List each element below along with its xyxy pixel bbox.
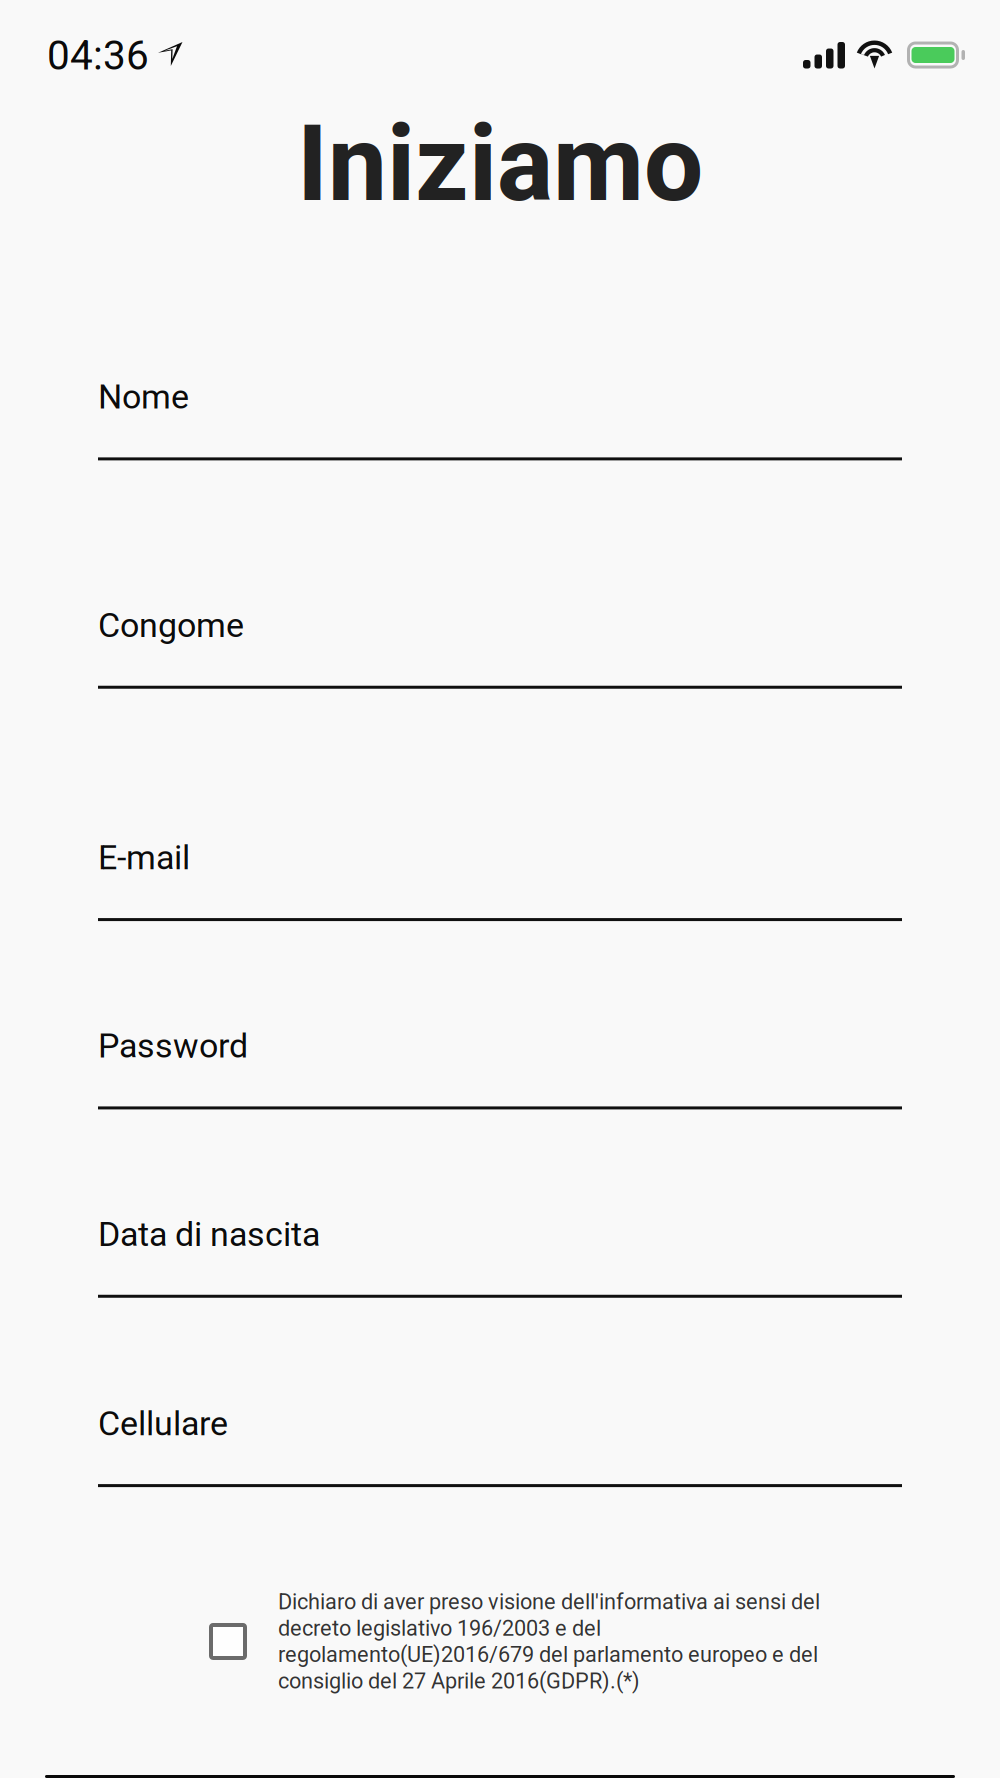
staticText: Data di nascita <box>98 1214 320 1254</box>
button[interactable]: Nome <box>98 377 902 460</box>
button[interactable]: E-mail <box>98 838 902 921</box>
button[interactable]: Dichiaro di aver preso visione dell'info… <box>0 1589 820 1694</box>
button[interactable]: Password <box>98 1026 902 1109</box>
staticText: E-mail <box>98 838 190 877</box>
staticText: decreto legislativo 196/2003 e del <box>278 1615 601 1641</box>
staticText: Iniziamo <box>297 102 703 225</box>
button[interactable]: Data di nascita <box>98 1214 902 1298</box>
button[interactable]: Cellulare <box>98 1404 902 1487</box>
staticText: consiglio del 27 Aprile 2016(GDPR).(*) <box>278 1668 640 1694</box>
staticText: Cellulare <box>98 1404 228 1444</box>
staticText: 04:36 <box>47 32 149 79</box>
button[interactable]: Congome <box>98 605 902 689</box>
staticText: Dichiaro di aver preso visione dell'info… <box>278 1589 820 1614</box>
staticText: Nome <box>98 377 189 417</box>
staticText: Congome <box>98 605 244 645</box>
staticText: regolamento(UE)2016/679 del parlamento e… <box>278 1642 818 1667</box>
button[interactable]: Registrati <box>0 1775 1000 1778</box>
staticText: Password <box>98 1026 248 1066</box>
